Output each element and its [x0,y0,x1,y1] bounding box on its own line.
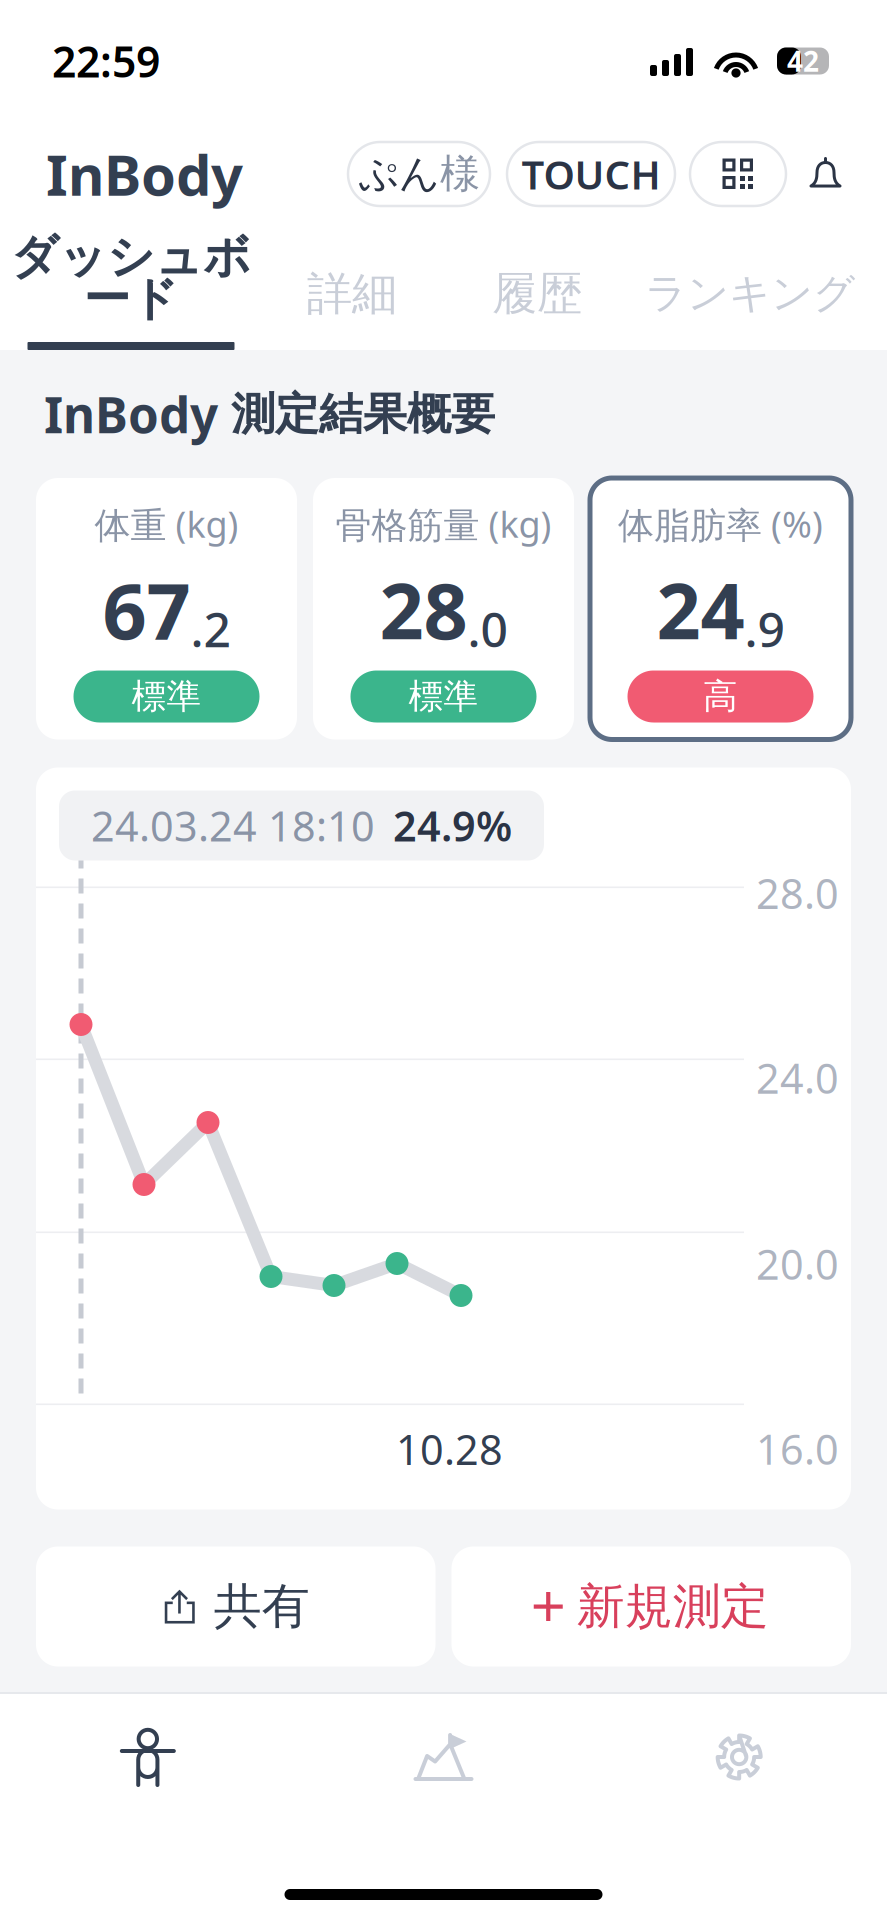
staticText: 28 [379,558,467,660]
button[interactable]: 新規測定 [451,1546,851,1666]
staticText: ダッシュボ [11,228,251,286]
staticText: .2 [190,597,230,660]
staticText: 22:59 [52,33,160,89]
staticText: 新規測定 [577,1577,769,1636]
staticText: 16.0 [756,1421,839,1476]
staticText: 20.0 [756,1236,839,1291]
button[interactable]: Settings [591,1694,887,1820]
button[interactable]: ダッシュボ [0,226,262,350]
staticText: ランキング [645,268,855,319]
staticText: 42 [787,42,819,80]
staticText: 骨格筋量 [335,504,479,548]
staticText: 履歴 [492,266,582,322]
staticText: TOUCH [521,147,660,200]
staticText: ぷん [358,149,440,198]
staticText: 体脂肪率 [618,504,762,548]
staticText: 67 [102,558,190,660]
staticText: ード [83,270,178,328]
staticText: (%) [762,500,823,548]
staticText: 共有 [214,1577,310,1636]
button[interactable]: Goals [296,1694,591,1820]
staticText: 測定結果概要 [218,387,495,441]
staticText: 体重 [94,504,166,548]
button[interactable]: 詳細 [262,226,442,350]
button[interactable]: QR code [690,142,786,206]
staticText: 様 [440,149,480,198]
button[interactable]: 履歴 [442,226,632,350]
button[interactable]: Notifications [808,157,843,191]
button[interactable]: 共有 [36,1546,435,1666]
staticText: 24.0 [756,1050,839,1105]
button[interactable]: Body [0,1694,296,1820]
button[interactable]: ぷん [348,142,490,206]
staticText: (kg) [166,500,238,548]
staticText: .9 [744,597,784,660]
staticText: 標準 [408,675,478,718]
button[interactable]: ランキング [632,226,868,350]
staticText: 28.0 [756,865,839,920]
staticText: 高 [703,675,738,718]
button[interactable]: TOUCH [507,142,675,206]
staticText: 24 [656,558,744,660]
staticText: 24.03.24 18:10 [91,798,375,853]
staticText: 10.28 [396,1421,503,1476]
staticText: (kg) [479,500,551,548]
staticText: InBody [44,381,218,447]
staticText: 標準 [131,675,201,718]
staticText: 24.9% [393,798,512,853]
staticText: .0 [467,597,507,660]
staticText: 詳細 [307,266,397,322]
staticText: InBody [46,137,243,211]
